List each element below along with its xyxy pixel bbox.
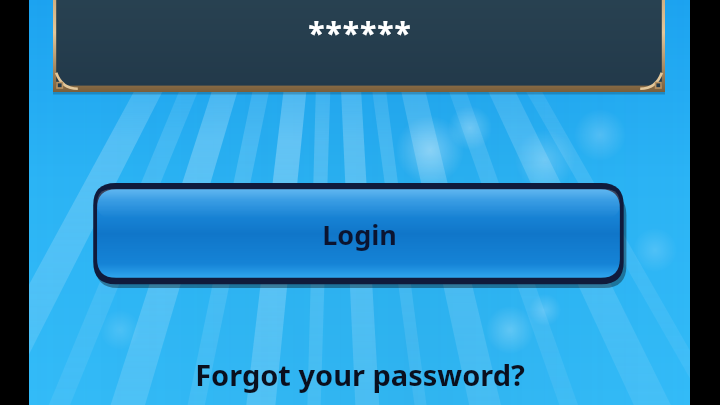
staticText: Login (322, 216, 397, 253)
button[interactable]: Login (90, 183, 628, 289)
staticText: Forgot your password? (195, 355, 525, 394)
button[interactable]: Forgot your password? (195, 355, 525, 394)
staticText: ****** (0, 12, 720, 46)
